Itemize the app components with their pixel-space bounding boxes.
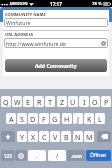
staticText: 17:17: [50, 1, 62, 7]
staticText: D: [30, 114, 36, 124]
button[interactable]: Winfuture: [4, 18, 108, 27]
staticText: Z: [60, 97, 65, 107]
button[interactable]: S: [17, 113, 27, 124]
staticText: MEDION: [10, 1, 28, 7]
staticText: /: [56, 152, 59, 160]
staticText: L: [98, 114, 102, 124]
button[interactable]: L: [95, 113, 105, 124]
staticText: W: [14, 97, 21, 107]
staticText: T: [48, 97, 52, 107]
button[interactable]: J: [73, 113, 83, 124]
staticText: I: [83, 97, 86, 107]
button[interactable]: E: [23, 96, 33, 107]
button[interactable]: B: [61, 131, 71, 142]
button[interactable]: Clear text: [101, 41, 106, 46]
staticText: Öffnen: [90, 152, 107, 159]
staticText: .com: [71, 153, 82, 159]
button[interactable]: X: [28, 131, 38, 142]
button[interactable]: Backspace: [97, 131, 111, 142]
staticText: COMMUNITY NAME: [5, 12, 46, 18]
button[interactable]: F: [39, 113, 49, 124]
staticText: Q: [3, 97, 9, 107]
button[interactable]: Y: [17, 131, 27, 142]
button[interactable]: .: [28, 150, 46, 161]
staticText: R: [37, 97, 42, 107]
staticText: M: [86, 132, 93, 142]
button[interactable]: U: [68, 96, 78, 107]
button[interactable]: Z: [57, 96, 67, 107]
button[interactable]: H: [62, 113, 72, 124]
button[interactable]: A: [6, 113, 16, 124]
button[interactable]: N: [73, 131, 83, 142]
staticText: C: [42, 132, 47, 142]
button[interactable]: V: [50, 131, 60, 142]
staticText: 123: [4, 153, 12, 159]
button[interactable]: T: [45, 96, 55, 107]
button[interactable]: P: [101, 96, 111, 107]
staticText: Winfuture: [6, 19, 31, 26]
button[interactable]: D: [28, 113, 38, 124]
staticText: URL ADDRESS: [5, 32, 34, 38]
button[interactable]: I: [79, 96, 89, 107]
staticText: O: [92, 97, 98, 107]
button[interactable]: M: [84, 131, 94, 142]
button[interactable]: http://www.winfuture.de: [4, 38, 108, 48]
staticText: 78 %: [92, 1, 102, 7]
staticText: P: [104, 97, 109, 107]
staticText: F: [42, 114, 46, 124]
staticText: H: [64, 114, 70, 124]
button[interactable]: Q: [1, 96, 11, 107]
button[interactable]: /: [48, 150, 66, 161]
button[interactable]: W: [12, 96, 22, 107]
button[interactable]: C: [39, 131, 49, 142]
button[interactable]: 123: [1, 150, 14, 161]
staticText: S: [20, 114, 24, 124]
staticText: Y: [20, 132, 25, 142]
staticText: J: [77, 114, 79, 124]
staticText: X: [31, 132, 36, 142]
button[interactable]: Add Community: [5, 59, 107, 72]
staticText: N: [75, 132, 81, 142]
button[interactable]: K: [84, 113, 94, 124]
staticText: E: [26, 97, 30, 107]
button[interactable]: G: [50, 113, 60, 124]
staticText: http://www.winfuture.de: [6, 40, 66, 47]
button[interactable]: Change keyboard: [15, 150, 27, 161]
button[interactable]: Öffnen: [86, 150, 111, 161]
staticText: U: [70, 97, 76, 107]
button[interactable]: O: [90, 96, 100, 107]
button[interactable]: .com: [67, 150, 85, 161]
button[interactable]: R: [34, 96, 44, 107]
staticText: B: [64, 132, 69, 142]
staticText: G: [52, 114, 58, 124]
staticText: .: [36, 152, 38, 160]
staticText: Add Community: [35, 62, 77, 69]
staticText: V: [53, 132, 58, 142]
button[interactable]: Shift: [1, 131, 15, 142]
staticText: A: [9, 114, 14, 124]
staticText: K: [87, 114, 92, 124]
